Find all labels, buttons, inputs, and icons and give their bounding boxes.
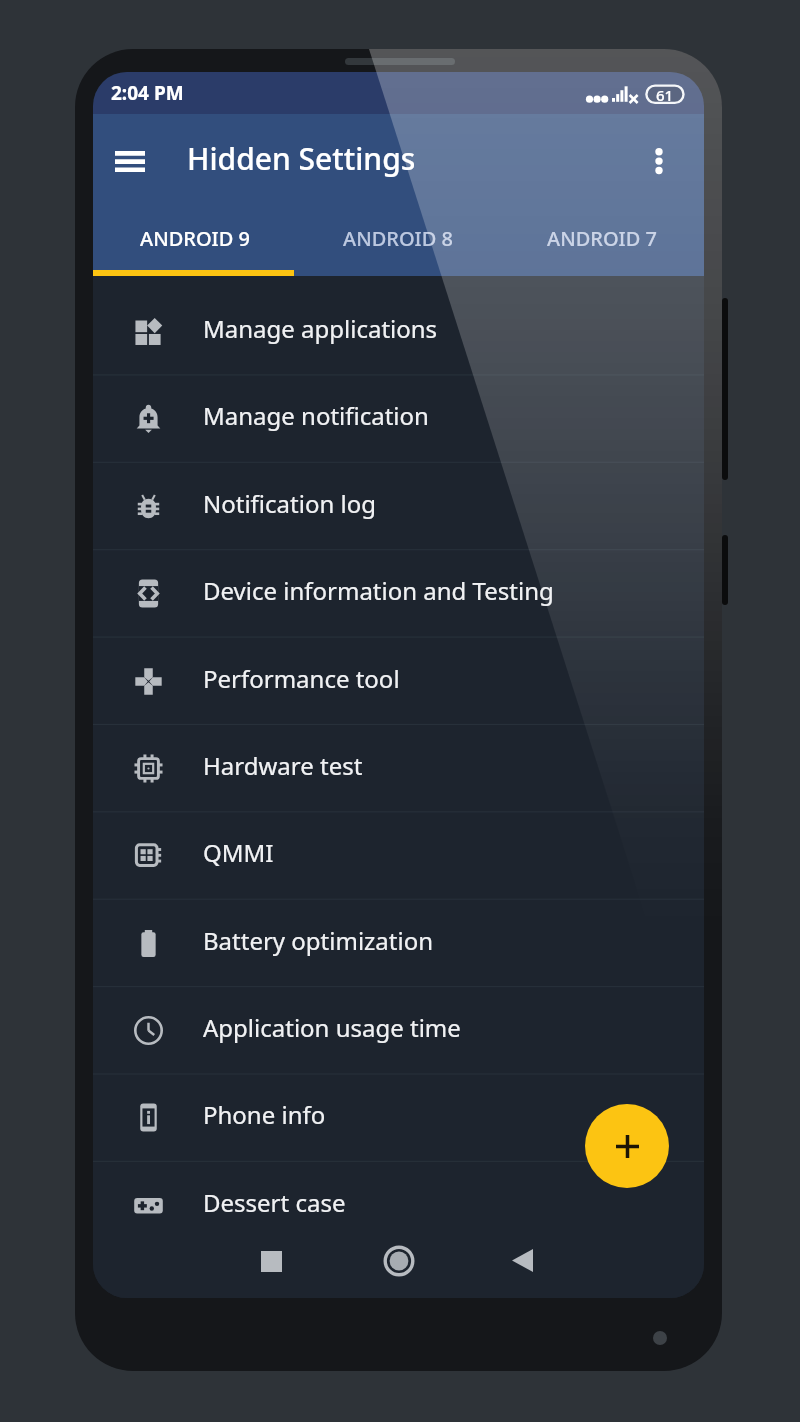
staticText: Application usage time [203,1011,461,1044]
button[interactable]: ANDROID 7 [500,207,704,276]
button[interactable]: ANDROID 8 [296,207,500,276]
staticText: QMMI [203,836,274,869]
staticText: ANDROID 7 [547,225,657,252]
button[interactable]: Notification log [93,463,704,550]
button[interactable]: Manage applications [93,288,704,375]
staticText: ANDROID 9 [140,225,250,252]
button[interactable]: Hardware test [93,725,704,812]
staticText: 61 [656,85,674,103]
button[interactable]: QMMI [93,812,704,899]
button[interactable]: Manage notification [93,375,704,462]
button[interactable]: Dessert case [93,1162,704,1249]
staticText: Dessert case [203,1186,346,1219]
button[interactable]: Performance tool [93,638,704,725]
button[interactable]: Device information and Testing [93,550,704,637]
button[interactable]: Recent apps [251,1241,292,1282]
staticText: Device information and Testing [203,574,554,607]
button[interactable]: More options [637,139,681,183]
button[interactable]: Navigation menu [105,136,155,186]
staticText: Battery optimization [203,924,434,957]
button[interactable]: Back [502,1240,543,1281]
button[interactable]: ANDROID 9 [93,207,296,276]
staticText: Hardware test [203,749,363,782]
staticText: Hidden Settings [187,138,416,179]
button[interactable]: Phone info [93,1074,704,1161]
button[interactable]: Application usage time [93,987,704,1074]
staticText: ANDROID 8 [343,225,453,252]
staticText: Manage notification [203,399,429,432]
button[interactable]: Add [585,1104,669,1188]
staticText: Phone info [203,1098,326,1131]
button[interactable]: Home [378,1240,419,1281]
staticText: Performance tool [203,662,400,695]
staticText: 2:04 PM [111,80,184,106]
button[interactable]: Battery optimization [93,900,704,987]
staticText: Manage applications [203,312,438,345]
staticText: Notification log [203,487,376,520]
